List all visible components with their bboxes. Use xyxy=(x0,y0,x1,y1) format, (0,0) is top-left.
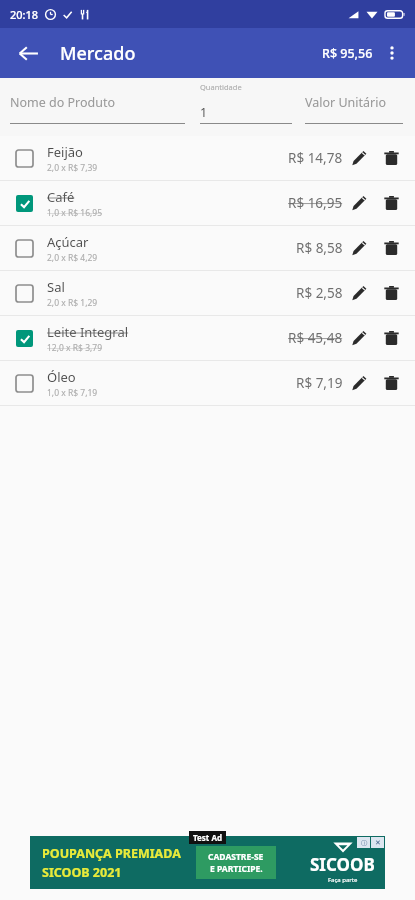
staticText: 20:18 xyxy=(10,7,39,22)
staticText: 2,0 x R$ 1,29 xyxy=(47,297,98,309)
staticText: ✕ xyxy=(375,839,381,847)
button[interactable]: Nome do Produto xyxy=(10,94,185,124)
staticText: E PARTICIPE. xyxy=(210,863,263,875)
button[interactable]: Toggle item xyxy=(9,143,39,173)
staticText: Leite Integral xyxy=(47,323,129,341)
button[interactable]: Back xyxy=(8,33,48,73)
staticText: R$ 16,95 xyxy=(288,194,343,212)
staticText: Sal xyxy=(47,278,65,296)
staticText: 2,0 x R$ 7,39 xyxy=(47,162,98,174)
staticText: SICOOB xyxy=(310,853,375,876)
staticText: Óleo xyxy=(47,368,76,386)
staticText: ⓘ xyxy=(361,839,367,847)
button[interactable]: Toggle item xyxy=(0,136,415,181)
button[interactable]: Delete xyxy=(375,322,407,354)
staticText: Test Ad xyxy=(193,832,222,843)
staticText: Açúcar xyxy=(47,233,89,251)
button[interactable]: Toggle item xyxy=(9,278,39,308)
staticText: 2,0 x R$ 4,29 xyxy=(47,252,98,264)
button[interactable]: Toggle item xyxy=(0,316,415,361)
button[interactable]: Toggle item xyxy=(0,361,415,406)
staticText: 12,0 x R$ 3,79 xyxy=(47,342,103,354)
staticText: R$ 14,78 xyxy=(288,149,343,167)
button[interactable]: Valor Unitário xyxy=(305,94,403,124)
button[interactable]: Quantidade xyxy=(200,82,292,124)
staticText: R$ 95,56 xyxy=(322,45,373,62)
button[interactable]: Toggle item xyxy=(0,226,415,271)
staticText: POUPANÇA PREMIADA xyxy=(42,845,181,862)
button[interactable]: Edit xyxy=(343,322,375,354)
staticText: Mercado xyxy=(60,41,136,66)
button[interactable]: Toggle item xyxy=(0,271,415,316)
staticText: R$ 45,48 xyxy=(288,329,343,347)
staticText: 1,0 x R$ 7,19 xyxy=(47,387,98,399)
button[interactable]: Toggle item xyxy=(9,368,39,398)
button[interactable]: Delete xyxy=(375,367,407,399)
staticText: Nome do Produto xyxy=(10,94,116,111)
button[interactable]: Delete xyxy=(375,277,407,309)
button[interactable]: Toggle item xyxy=(0,181,415,226)
staticText: Faça parte xyxy=(328,876,358,884)
button[interactable]: Delete xyxy=(375,142,407,174)
staticText: Feijão xyxy=(47,143,83,161)
button[interactable]: Edit xyxy=(343,142,375,174)
button[interactable]: Edit xyxy=(343,187,375,219)
button[interactable]: Edit xyxy=(343,232,375,264)
button[interactable]: Advertisement xyxy=(30,836,385,889)
button[interactable]: Delete xyxy=(375,232,407,264)
button[interactable]: Edit xyxy=(343,367,375,399)
staticText: Café xyxy=(47,188,75,206)
button[interactable]: Toggle item xyxy=(9,323,39,353)
staticText: 1,0 x R$ 16,95 xyxy=(47,207,103,219)
staticText: Quantidade xyxy=(200,82,242,92)
staticText: Valor Unitário xyxy=(305,94,387,111)
staticText: SICOOB 2021 xyxy=(42,864,122,881)
staticText: R$ 2,58 xyxy=(296,284,343,302)
staticText: R$ 8,58 xyxy=(296,239,343,257)
button[interactable]: More options xyxy=(373,34,411,72)
button[interactable]: Toggle item xyxy=(9,188,39,218)
button[interactable]: Edit xyxy=(343,277,375,309)
staticText: CADASTRE-SE xyxy=(208,851,264,863)
button[interactable]: Toggle item xyxy=(9,233,39,263)
button[interactable]: Delete xyxy=(375,187,407,219)
staticText: R$ 7,19 xyxy=(296,374,343,392)
staticText: 1 xyxy=(200,104,208,121)
